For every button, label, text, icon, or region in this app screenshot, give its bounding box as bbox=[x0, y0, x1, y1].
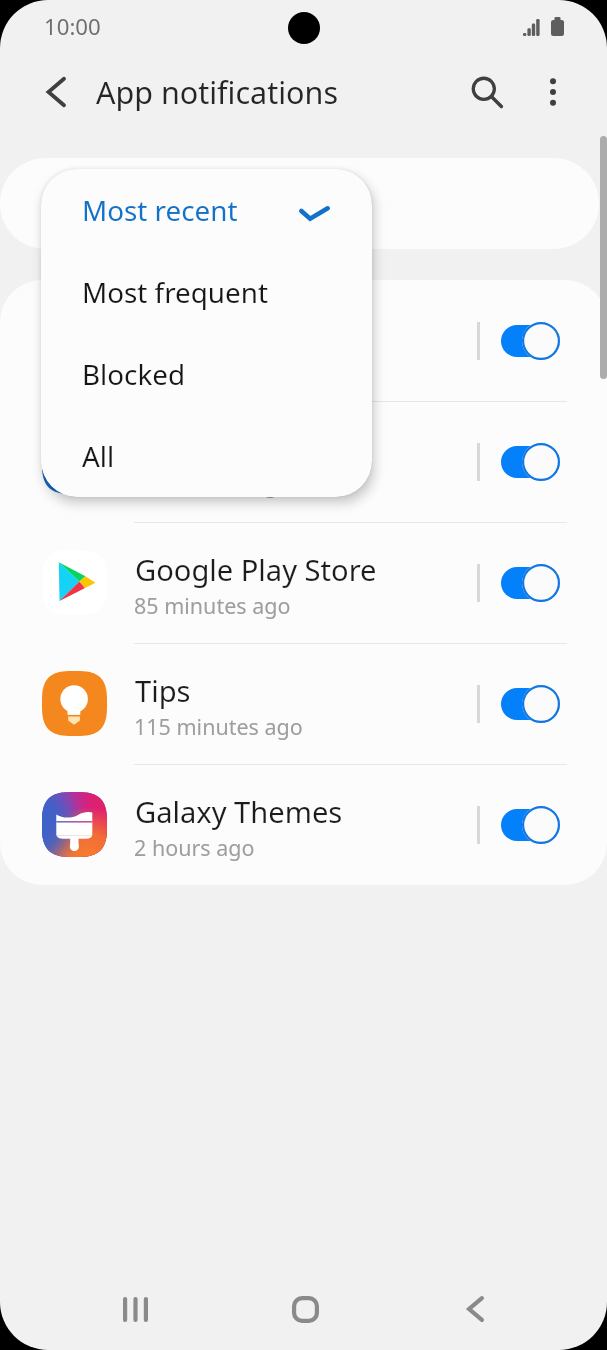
button[interactable]: Internet bbox=[0, 401, 607, 522]
staticText: Galaxy Themes bbox=[135, 792, 343, 832]
staticText: 115 minutes ago bbox=[134, 712, 303, 741]
button[interactable]: Back bbox=[432, 1266, 518, 1350]
staticText: Blocked bbox=[82, 355, 186, 393]
button[interactable] bbox=[0, 158, 599, 249]
staticText: App notifications bbox=[96, 71, 339, 113]
button[interactable] bbox=[501, 564, 560, 602]
staticText: Most frequent bbox=[82, 273, 268, 311]
staticText: Tips bbox=[135, 671, 191, 711]
staticText: Google Play Store bbox=[135, 550, 377, 590]
button[interactable]: All bbox=[41, 415, 372, 497]
staticText: 85 minutes ago bbox=[134, 591, 291, 620]
staticText: 30 minutes ago bbox=[134, 470, 291, 499]
button[interactable]: Most recent bbox=[41, 169, 372, 251]
button[interactable]: Recent apps bbox=[92, 1266, 178, 1350]
button[interactable]: Navigate up bbox=[29, 65, 83, 119]
staticText: All bbox=[82, 437, 115, 475]
button[interactable] bbox=[501, 806, 560, 844]
button[interactable]: Galaxy Themes bbox=[0, 764, 607, 885]
button[interactable] bbox=[501, 685, 560, 723]
button[interactable]: Search bbox=[458, 63, 516, 121]
button[interactable]: Most frequent bbox=[41, 251, 372, 333]
staticText: 10:00 bbox=[44, 11, 101, 41]
button[interactable] bbox=[501, 322, 560, 360]
button[interactable]: Messages bbox=[0, 280, 607, 401]
staticText: Most recent bbox=[82, 191, 238, 229]
button[interactable] bbox=[501, 443, 560, 481]
button[interactable]: Tips bbox=[0, 643, 607, 764]
button[interactable]: Google Play Store bbox=[0, 522, 607, 643]
staticText: 2 minutes ago bbox=[134, 349, 279, 378]
staticText: Messages bbox=[135, 308, 271, 348]
button[interactable]: Blocked bbox=[41, 333, 372, 415]
button[interactable]: Home bbox=[262, 1266, 348, 1350]
staticText: 2 hours ago bbox=[134, 833, 255, 862]
button[interactable]: More options bbox=[525, 64, 581, 120]
